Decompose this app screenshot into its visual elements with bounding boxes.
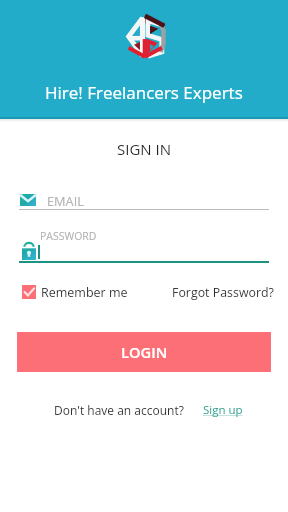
button[interactable]: LOGIN [17,332,271,372]
staticText: Hire! Freelancers Experts [45,81,243,104]
other: Email [20,194,36,206]
button[interactable]: Remember me [22,282,126,301]
staticText: SIGN IN [117,139,171,159]
button[interactable]: Forgot Password? [172,284,274,301]
staticText: Remember me [41,284,128,301]
staticText: Don't have an account? [54,402,184,418]
button[interactable]: Sign up [203,402,243,418]
staticText: EMAIL [47,192,84,209]
other: Password [22,242,36,260]
other: App logo [124,15,166,58]
staticText: PASSWORD [40,229,97,243]
staticText: Forgot Password? [172,284,274,301]
staticText: LOGIN [121,342,168,362]
